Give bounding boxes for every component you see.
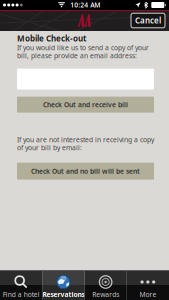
- button[interactable]: Rewards: [84, 270, 127, 300]
- staticText: If you are not interested in receiving a…: [17, 135, 154, 144]
- button[interactable]: Check Out and receive bill: [17, 97, 154, 113]
- staticText: If you would like us to send a copy of y…: [17, 43, 149, 52]
- button[interactable]: More: [127, 270, 169, 300]
- button[interactable]: Reservations: [42, 270, 84, 300]
- button[interactable]: Find a hotel: [0, 270, 42, 300]
- staticText: Rewards: [92, 290, 119, 299]
- staticText: Reservations: [42, 290, 84, 299]
- staticText: Cancel: [135, 15, 161, 26]
- staticText: bill, please provide an email address:: [17, 51, 137, 60]
- button[interactable]: Check Out and no bill will be sent: [17, 163, 154, 180]
- staticText: Check Out and no bill will be sent: [31, 167, 140, 176]
- staticText: 10:24 AM: [70, 1, 100, 9]
- button[interactable]: Cancel: [131, 13, 165, 28]
- staticText: More: [139, 290, 156, 299]
- staticText: Mobile Check-out: [17, 33, 86, 44]
- staticText: Find a hotel: [3, 290, 40, 299]
- staticText: Check Out and receive bill: [43, 100, 128, 109]
- staticText: of your bill by email:: [17, 143, 82, 152]
